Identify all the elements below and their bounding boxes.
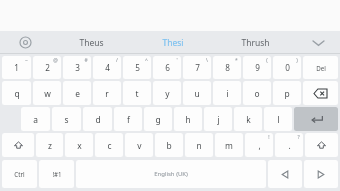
button[interactable]: 0 [273,56,301,79]
staticText: z [48,140,52,151]
button[interactable]: Delete [303,56,338,79]
button[interactable]: z [36,133,63,157]
staticText: k [246,114,251,125]
button[interactable]: 9 [243,56,271,79]
button[interactable]: v [125,133,153,157]
staticText: i [226,88,229,99]
staticText: d [95,114,101,125]
button[interactable]: d [83,107,112,131]
staticText: English (UK) [154,170,188,178]
button[interactable]: s [52,107,81,131]
staticText: w [44,88,51,99]
staticText: a [33,114,38,125]
button[interactable]: Enter [294,107,338,131]
button[interactable]: n [185,133,213,157]
staticText: h [185,114,191,125]
staticText: b [166,140,172,151]
staticText: 2 [45,62,50,73]
staticText: 5 [135,62,140,73]
button[interactable]: e [63,81,91,105]
button[interactable]: h [174,107,202,131]
staticText: ~ [25,57,28,64]
staticText: o [254,88,260,99]
button[interactable]: . [275,133,303,157]
staticText: Ctrl [14,170,25,178]
button[interactable]: 2 [33,56,61,79]
staticText: g [155,114,161,125]
staticText: u [194,88,200,99]
button[interactable]: a [21,107,50,131]
button[interactable]: 3 [63,56,91,79]
staticText: / [116,57,118,64]
staticText: # [84,57,88,64]
staticText: , [258,140,261,151]
button[interactable]: t [123,81,151,105]
staticText: * [235,57,238,64]
button[interactable]: Shift [2,133,34,157]
staticText: 4 [105,62,110,73]
staticText: 6 [165,62,170,73]
button[interactable]: i [213,81,241,105]
button[interactable]: Ctrl [2,160,37,188]
staticText: !#1 [52,170,62,178]
button[interactable]: q [2,81,31,105]
button[interactable]: m [215,133,243,157]
button[interactable]: 6 [153,56,181,79]
button[interactable]: 8 [213,56,241,79]
button[interactable]: 5 [123,56,151,79]
staticText: 3 [75,62,80,73]
button[interactable]: l [264,107,292,131]
staticText: ! [268,134,270,141]
button[interactable]: Shift [305,133,338,157]
button[interactable]: p [273,81,301,105]
staticText: j [217,114,220,125]
button[interactable]: Backspace [303,81,338,105]
staticText: x [77,140,82,151]
staticText: 9 [255,62,260,73]
button[interactable]: Move cursor left [268,160,302,188]
staticText: r [105,88,109,99]
button[interactable]: w [33,81,61,105]
staticText: m [225,140,233,151]
button[interactable]: Space [76,160,266,188]
button[interactable]: f [114,107,142,131]
button[interactable]: Thrush [214,31,296,54]
staticText: ' [176,57,178,64]
staticText: Thrush [241,37,270,49]
staticText: @ [53,57,58,64]
button[interactable]: u [183,81,211,105]
staticText: ^ [145,57,148,64]
button[interactable]: b [155,133,183,157]
staticText: 1 [14,62,19,73]
staticText: 7 [195,62,200,73]
button[interactable]: !#1 [39,160,74,188]
button[interactable]: x [65,133,93,157]
button[interactable]: o [243,81,271,105]
button[interactable]: c [95,133,123,157]
button[interactable]: Gboard menu [0,31,50,54]
button[interactable]: k [234,107,262,131]
button[interactable]: Expand suggestions [296,31,340,54]
button[interactable]: g [144,107,172,131]
button[interactable]: 1 [2,56,31,79]
button[interactable]: Theus [50,31,132,54]
staticText: Del [316,64,326,72]
button[interactable]: y [153,81,181,105]
staticText: c [107,140,112,151]
staticText: y [165,88,170,99]
staticText: Theus [79,37,104,49]
button[interactable]: Thesi [132,31,214,54]
staticText: 8 [225,62,230,73]
staticText: . [288,140,291,151]
staticText: n [196,140,202,151]
button[interactable]: j [204,107,232,131]
staticText: e [75,88,80,99]
button[interactable]: 7 [183,56,211,79]
button[interactable]: , [245,133,273,157]
staticText: f [127,114,130,125]
staticText: s [64,114,69,125]
button[interactable]: r [93,81,121,105]
button[interactable]: 4 [93,56,121,79]
staticText: v [137,140,142,151]
button[interactable]: Move cursor right [304,160,338,188]
